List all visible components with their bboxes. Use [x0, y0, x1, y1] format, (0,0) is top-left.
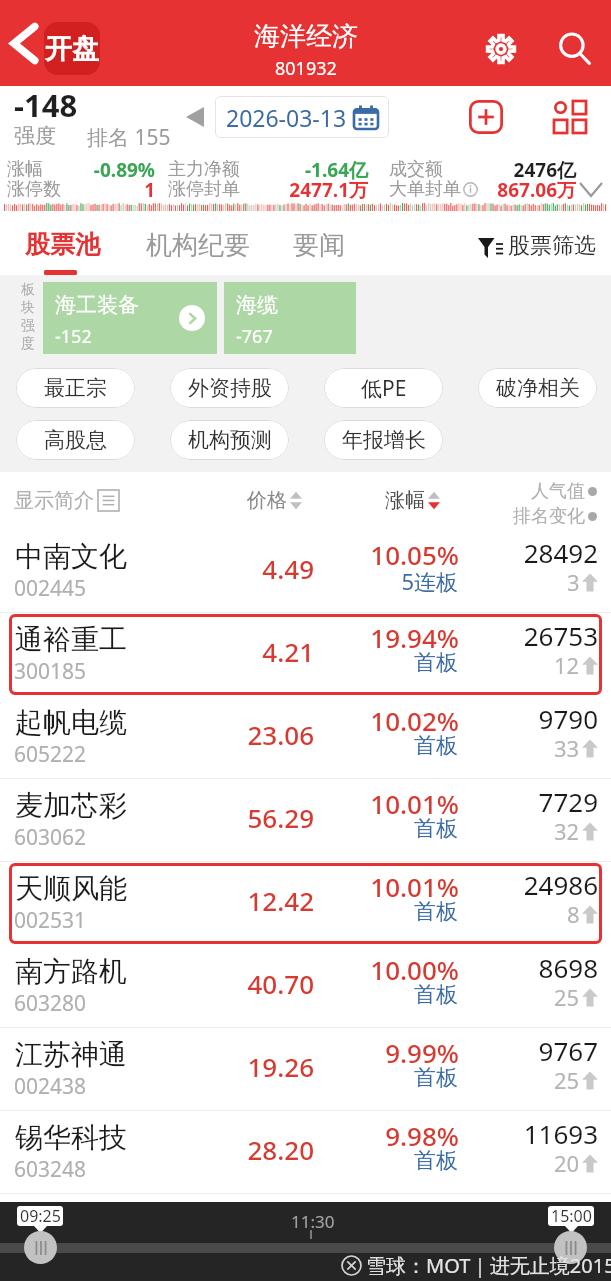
staticText: 首板: [330, 732, 458, 760]
button[interactable]: 2026-03-13: [226, 96, 378, 138]
staticText: 要闻: [293, 229, 345, 262]
staticText: 4.21: [180, 634, 314, 669]
staticText: 机构纪要: [146, 229, 250, 262]
staticText: 12.42: [180, 883, 314, 918]
staticText: -148: [14, 84, 78, 126]
staticText: 1: [35, 177, 155, 203]
staticText: 24986: [470, 867, 598, 902]
staticText: 23.06: [180, 717, 314, 752]
button[interactable]: 机构纪要: [146, 229, 250, 262]
staticText: 涨幅: [385, 488, 425, 513]
staticText: 603280: [14, 989, 87, 1018]
button[interactable]: 最正宗: [16, 368, 135, 408]
button[interactable]: 股票池: [25, 229, 100, 260]
staticText: 高股息: [44, 427, 107, 453]
staticText: 海工装备: [55, 292, 139, 318]
staticText: 成交额: [389, 158, 443, 181]
button[interactable]: 破净相关: [478, 368, 597, 408]
button[interactable]: 显示简介: [14, 488, 119, 513]
button[interactable]: End time: [554, 1231, 587, 1264]
staticText: 首板: [330, 1147, 458, 1175]
staticText: 8698: [470, 950, 598, 985]
staticText: 19.26: [180, 1049, 314, 1084]
staticText: 28492: [470, 535, 598, 570]
staticText: 起帆电缆: [15, 705, 127, 740]
button[interactable]: 天顺风能: [0, 862, 611, 945]
staticText: 9790: [470, 701, 598, 736]
button[interactable]: 要闻: [293, 229, 345, 262]
staticText: 11693: [470, 1116, 598, 1151]
staticText: 7729: [470, 784, 598, 819]
button[interactable]: Search: [551, 25, 597, 71]
staticText: 麦加芯彩: [15, 788, 127, 823]
button[interactable]: 开盘: [44, 22, 100, 75]
staticText: 26753: [470, 618, 598, 653]
button[interactable]: 麦加芯彩: [0, 779, 611, 862]
staticText: 破净相关: [496, 375, 580, 401]
staticText: 强: [21, 317, 35, 335]
staticText: 中南文化: [15, 539, 127, 574]
staticText: 首板: [330, 981, 458, 1009]
staticText: 33: [554, 733, 580, 763]
staticText: 强度: [14, 123, 56, 149]
staticText: 通裕重工: [15, 622, 127, 657]
button[interactable]: 高股息: [16, 420, 135, 460]
button[interactable]: 股票筛选: [478, 232, 596, 260]
staticText: 首板: [330, 815, 458, 843]
staticText: -767: [236, 324, 273, 349]
staticText: -0.89%: [35, 157, 155, 183]
button[interactable]: 中南文化: [0, 530, 611, 613]
staticText: 海洋经济: [254, 20, 358, 53]
staticText: 15:00: [551, 1206, 592, 1226]
staticText: 40.70: [180, 966, 314, 1001]
staticText: 南方路机: [15, 954, 127, 989]
staticText: 9.98%: [330, 1118, 459, 1153]
staticText: 年报增长: [342, 427, 426, 453]
staticText: 10.02%: [330, 703, 459, 738]
button[interactable]: 江苏神通: [0, 1028, 611, 1111]
staticText: 9767: [470, 1033, 598, 1068]
button[interactable]: 外资持股: [170, 368, 289, 408]
button[interactable]: 锡华科技: [0, 1111, 611, 1194]
staticText: 20: [554, 1148, 580, 1178]
staticText: 首板: [330, 1064, 458, 1092]
staticText: 2026-03-13: [226, 102, 347, 133]
button[interactable]: Start time: [24, 1231, 57, 1264]
staticText: 低PE: [361, 374, 407, 403]
staticText: 10.00%: [330, 952, 459, 987]
staticText: 机构预测: [188, 427, 272, 453]
button[interactable]: 南方路机: [0, 945, 611, 1028]
button[interactable]: 海缆: [224, 282, 356, 354]
staticText: 10.01%: [330, 869, 459, 904]
staticText: 主力净额: [168, 158, 240, 181]
staticText: 10.05%: [330, 537, 459, 572]
staticText: 605222: [14, 740, 87, 769]
staticText: 12: [554, 650, 580, 680]
staticText: -1.64亿: [248, 157, 368, 183]
staticText: 32: [554, 816, 580, 846]
staticText: 板: [21, 281, 35, 299]
staticText: 股票筛选: [508, 232, 596, 260]
button[interactable]: 价格: [247, 488, 302, 513]
button[interactable]: 海工装备: [43, 282, 217, 354]
staticText: 人气值: [531, 480, 585, 503]
button[interactable]: 通裕重工: [0, 613, 611, 696]
staticText: 9.99%: [330, 1035, 459, 1070]
staticText: 3: [567, 567, 580, 597]
button[interactable]: Add: [462, 93, 510, 141]
staticText: 首板: [330, 649, 458, 677]
button[interactable]: 起帆电缆: [0, 696, 611, 779]
staticText: 排名变化: [513, 505, 585, 528]
button[interactable]: Settings: [478, 26, 524, 72]
button[interactable]: 年报增长: [324, 420, 443, 460]
staticText: 2476亿: [448, 157, 576, 183]
staticText: 价格: [247, 488, 287, 513]
button[interactable]: 涨幅: [385, 488, 440, 513]
staticText: 2477.1万: [248, 177, 368, 203]
staticText: 显示简介: [14, 488, 94, 513]
staticText: 雪球：MOT｜进无止境2015: [366, 1252, 611, 1279]
button[interactable]: 低PE: [324, 368, 443, 408]
button[interactable]: More: [546, 93, 594, 141]
button[interactable]: Back: [2, 21, 46, 65]
button[interactable]: 机构预测: [170, 420, 289, 460]
